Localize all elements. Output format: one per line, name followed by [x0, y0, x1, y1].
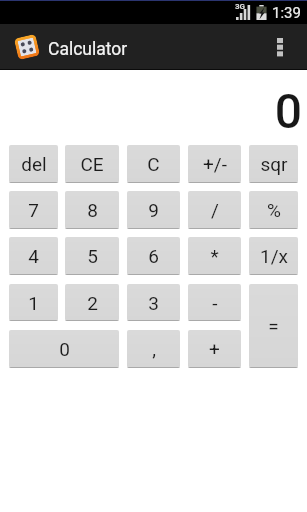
button[interactable]: 0 [9, 330, 119, 368]
staticText: 1:39 [272, 4, 301, 22]
staticText: Calculator [48, 39, 128, 60]
button[interactable]: * [188, 237, 241, 275]
button[interactable]: 9 [127, 191, 180, 229]
button[interactable]: % [249, 191, 298, 229]
staticText: 9 [148, 199, 159, 221]
button[interactable]: Calculator, home [0, 24, 140, 69]
button[interactable]: 1 [9, 284, 58, 321]
button[interactable]: 3 [127, 284, 180, 321]
staticText: 3G [235, 2, 246, 11]
button[interactable]: + [188, 330, 241, 368]
staticText: C [147, 153, 160, 175]
staticText: , [152, 338, 156, 360]
staticText: = [268, 315, 279, 337]
staticText: 8 [87, 199, 98, 221]
button[interactable]: 7 [9, 191, 58, 229]
staticText: CE [80, 153, 104, 175]
staticText: 2 [87, 292, 98, 314]
button[interactable]: 4 [9, 237, 58, 275]
button[interactable]: sqr [249, 145, 298, 183]
staticText: * [210, 245, 219, 267]
button[interactable]: 1/x [249, 237, 298, 275]
button[interactable]: = [249, 284, 298, 368]
staticText: + [209, 338, 220, 360]
staticText: 0 [59, 338, 70, 360]
button[interactable]: 2 [65, 284, 119, 321]
staticText: 3 [148, 292, 159, 314]
button[interactable]: 8 [65, 191, 119, 229]
button[interactable]: / [188, 191, 241, 229]
staticText: - [212, 292, 218, 314]
button[interactable]: 6 [127, 237, 180, 275]
staticText: 7 [28, 199, 39, 221]
button[interactable]: CE [65, 145, 119, 183]
staticText: +/- [203, 153, 227, 175]
staticText: 4 [28, 245, 39, 267]
staticText: 0 [0, 83, 302, 139]
button[interactable]: C [127, 145, 180, 183]
button[interactable]: - [188, 284, 241, 321]
button[interactable]: , [127, 330, 180, 368]
staticText: del [21, 153, 47, 175]
button[interactable]: +/- [188, 145, 241, 183]
staticText: 5 [87, 245, 98, 267]
staticText: / [211, 199, 219, 221]
staticText: 6 [148, 245, 159, 267]
button[interactable]: del [9, 145, 58, 183]
staticText: 1 [28, 292, 39, 314]
button[interactable]: More options [253, 24, 307, 69]
staticText: % [267, 199, 281, 221]
staticText: 1/x [260, 245, 288, 267]
staticText: sqr [260, 153, 288, 175]
button[interactable]: 5 [65, 237, 119, 275]
